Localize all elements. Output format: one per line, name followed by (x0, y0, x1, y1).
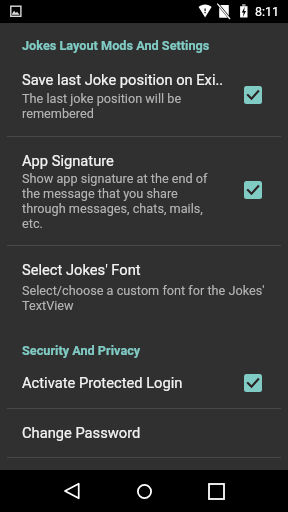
staticText: Select Jokes' Font (22, 261, 141, 278)
staticText: Show app signature at the end of the mes… (22, 171, 212, 231)
staticText: Change Password (22, 424, 141, 441)
staticText: Security And Privacy (22, 343, 141, 358)
button[interactable]: Recent apps (196, 471, 236, 511)
staticText: App Signature (22, 152, 114, 169)
button[interactable]: App Signature (0, 140, 288, 244)
button[interactable]: Back (52, 471, 92, 511)
staticText: Save last Joke position on Exi.. (22, 71, 224, 88)
button[interactable]: Change Password (0, 412, 288, 457)
staticText: Jokes Layout Mods And Settings (22, 38, 210, 53)
staticText: Select/choose a custom font for the Joke… (22, 283, 270, 313)
button[interactable]: Select Jokes' Font (0, 250, 288, 320)
button[interactable]: Activate Protected Login (0, 366, 288, 407)
staticText: The last joke position will be remembere… (22, 91, 212, 121)
staticText: 8:11 (255, 4, 280, 19)
staticText: Activate Protected Login (22, 374, 183, 391)
button[interactable]: Home (124, 471, 164, 511)
button[interactable]: Save last Joke position on Exit (0, 59, 288, 135)
